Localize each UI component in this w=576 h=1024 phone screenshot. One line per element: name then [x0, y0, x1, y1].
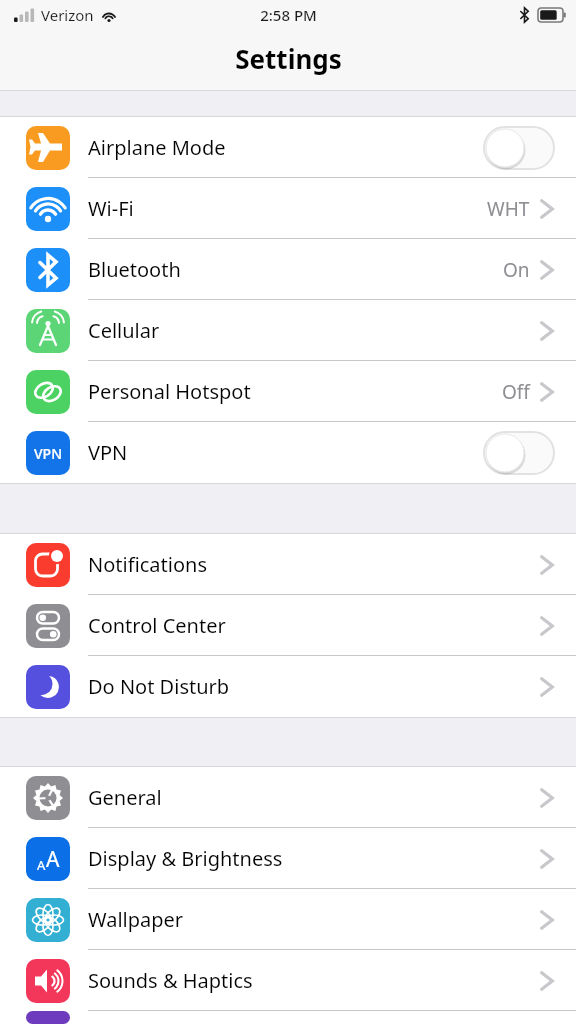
staticText: VPN	[34, 444, 63, 463]
staticText: VPN	[88, 439, 128, 466]
staticText: On	[503, 257, 530, 283]
button[interactable]: VPN toggle	[484, 432, 554, 474]
button[interactable]: Bluetooth	[0, 239, 576, 300]
button[interactable]: Do Not Disturb	[0, 656, 576, 717]
button[interactable]: Wallpaper	[0, 889, 576, 950]
button[interactable]	[0, 1011, 576, 1024]
staticText: A	[46, 845, 60, 874]
button[interactable]: Airplane Mode toggle	[484, 127, 554, 169]
button[interactable]: Cellular	[0, 300, 576, 361]
staticText: Off	[502, 379, 530, 405]
staticText: 2:58 PM	[260, 5, 317, 25]
staticText: Wi-Fi	[88, 195, 134, 222]
staticText: Cellular	[88, 317, 160, 344]
staticText: General	[88, 784, 162, 811]
button[interactable]: Control Center	[0, 595, 576, 656]
staticText: Personal Hotspot	[88, 378, 251, 405]
staticText: Do Not Disturb	[88, 673, 230, 700]
staticText: Wallpaper	[88, 906, 184, 933]
button[interactable]: Sounds & Haptics	[0, 950, 576, 1011]
button[interactable]: A	[0, 828, 576, 889]
staticText: Airplane Mode	[88, 134, 226, 161]
staticText: Settings	[235, 41, 342, 76]
staticText: Sounds & Haptics	[88, 967, 253, 994]
staticText: WHT	[487, 196, 530, 222]
staticText: A	[37, 856, 46, 874]
staticText: Notifications	[88, 551, 207, 578]
button[interactable]: VPN	[0, 422, 576, 483]
staticText: Bluetooth	[88, 256, 181, 283]
staticText: Display & Brightness	[88, 845, 283, 872]
staticText: Verizon	[41, 5, 94, 25]
staticText: Control Center	[88, 612, 226, 639]
button[interactable]: Wi-Fi	[0, 178, 576, 239]
button[interactable]: Personal Hotspot	[0, 361, 576, 422]
button[interactable]: Airplane Mode	[0, 117, 576, 178]
button[interactable]: General	[0, 767, 576, 828]
button[interactable]: Notifications	[0, 534, 576, 595]
